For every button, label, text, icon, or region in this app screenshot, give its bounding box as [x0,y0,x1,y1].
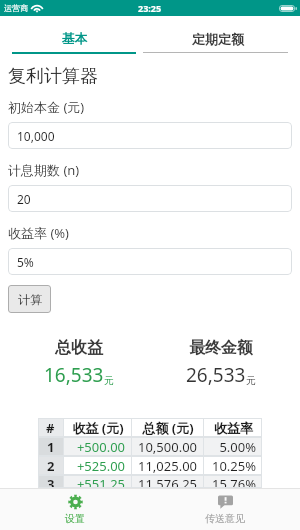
staticText: 5% [17,254,34,270]
staticText: +551.25 [76,475,125,488]
staticText: 计息期数 (n) [8,161,80,179]
staticText: 2 [47,457,55,475]
button[interactable]: 20 [8,185,292,212]
staticText: 传送意见 [205,512,245,525]
staticText: 最终金额 [189,338,253,358]
button[interactable]: 定期定额 [136,16,300,54]
staticText: 运营商 [4,3,28,13]
staticText: 元 [104,374,114,387]
staticText: 收益率 [214,420,253,436]
staticText: 计算 [18,292,42,307]
staticText: # [46,419,55,437]
staticText: 复利计算器 [8,65,98,88]
staticText: 11,576.25 [137,475,197,488]
staticText: 收益率 (%) [8,224,69,242]
staticText: 26,533 [186,362,246,388]
button[interactable]: 5% [8,248,292,275]
staticText: 10,000 [17,128,55,144]
button[interactable]: 基本 [0,16,136,54]
staticText: 收益 (元) [72,419,124,437]
staticText: 15.76% [211,475,256,488]
staticText: 元 [246,374,256,387]
button[interactable]: 传送意见 [150,489,300,530]
staticText: 基本 [62,31,87,47]
staticText: 10.25% [211,457,256,475]
staticText: 10,500.00 [137,438,197,456]
staticText: 16,533 [44,362,104,388]
staticText: 3 [47,475,55,488]
staticText: 初始本金 (元) [8,98,85,116]
button[interactable]: 计算 [8,285,51,313]
staticText: +500.00 [76,438,125,456]
staticText: 11,025.00 [137,457,197,475]
staticText: 20 [17,191,31,207]
staticText: +525.00 [76,457,125,475]
staticText: 总收益 [55,338,103,358]
staticText: 23:25 [138,2,162,14]
staticText: 1 [47,438,55,456]
staticText: 设置 [65,512,85,525]
button[interactable]: 设置 [0,489,150,530]
button[interactable]: 10,000 [8,122,292,149]
staticText: 5.00% [219,438,256,456]
staticText: 定期定额 [192,31,244,47]
staticText: 总额 (元) [142,419,194,437]
